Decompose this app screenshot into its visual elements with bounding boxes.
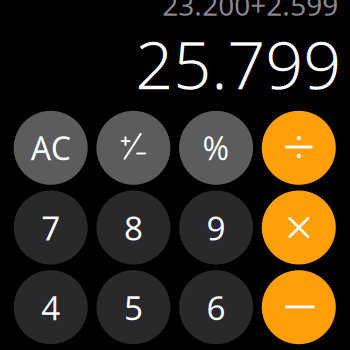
staticText: 8 — [124, 205, 143, 250]
button[interactable]: 6 — [179, 270, 253, 344]
button[interactable]: % — [179, 111, 253, 185]
staticText: 9 — [207, 205, 226, 250]
button[interactable]: 9 — [179, 190, 253, 264]
button[interactable]: Subtract — [262, 270, 336, 344]
staticText: 23.200+2.599 — [162, 0, 338, 24]
button[interactable]: 7 — [14, 190, 88, 264]
button[interactable]: 8 — [96, 190, 170, 264]
button[interactable]: 4 — [14, 270, 88, 344]
staticText: % — [203, 127, 230, 169]
staticText: 6 — [207, 285, 226, 329]
staticText: 5 — [124, 285, 143, 329]
button[interactable]: Divide — [262, 111, 336, 185]
staticText: AC — [31, 127, 71, 169]
button[interactable]: 5 — [96, 270, 170, 344]
staticText: 25.799 — [135, 19, 341, 108]
staticText: 4 — [41, 285, 60, 329]
button[interactable]: AC — [14, 111, 88, 185]
button[interactable]: Multiply — [262, 190, 336, 264]
staticText: 7 — [41, 205, 60, 250]
button[interactable]: Plus Minus — [96, 111, 170, 185]
